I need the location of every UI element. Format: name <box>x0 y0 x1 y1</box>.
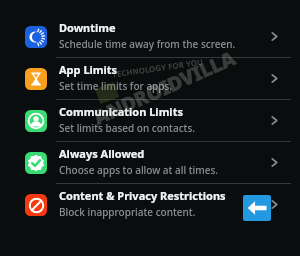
staticText: Set time limits for apps. <box>59 79 173 93</box>
button[interactable]: Back <box>243 195 271 221</box>
staticText: TECHNOLOGY FOR YOU <box>112 57 204 79</box>
staticText: Schedule time away from the screen. <box>59 37 236 51</box>
staticText: Set limits based on contacts. <box>59 121 195 135</box>
staticText: Content & Privacy Restrictions <box>59 188 226 203</box>
staticText: ANDROIDVILLA <box>89 44 239 131</box>
staticText: Block inappropriate content. <box>59 205 196 219</box>
staticText: Communication Limits <box>59 104 183 119</box>
staticText: Downtime <box>59 20 116 35</box>
button[interactable]: Communication Limits <box>0 100 300 141</box>
button[interactable]: App Limits <box>0 58 300 99</box>
staticText: Choose apps to allow at all times. <box>59 163 219 177</box>
staticText: App Limits <box>59 62 118 77</box>
button[interactable]: Content & Privacy Restrictions <box>0 184 300 225</box>
button[interactable]: Downtime <box>0 16 300 57</box>
button[interactable]: Always Allowed <box>0 142 300 183</box>
staticText: Always Allowed <box>59 146 145 161</box>
